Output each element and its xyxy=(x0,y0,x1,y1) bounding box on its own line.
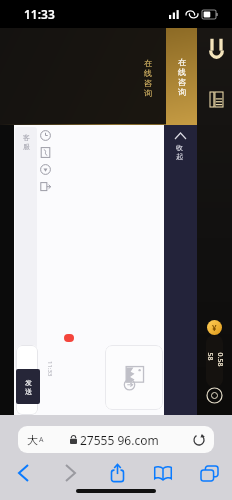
button[interactable]: Bookmarks xyxy=(140,459,186,487)
other: Collapse xyxy=(175,133,186,139)
staticText: 询 xyxy=(178,87,186,97)
other: Reload xyxy=(193,434,205,446)
staticText: 11:33 xyxy=(46,361,54,377)
button[interactable]: Tool 2 xyxy=(40,164,51,175)
button[interactable]: Back xyxy=(0,459,47,487)
button[interactable]: 发 xyxy=(16,369,40,404)
button[interactable]: Tool 0 xyxy=(40,130,51,141)
staticText: 0.5858 xyxy=(206,352,223,369)
staticText: ¥ xyxy=(212,322,217,333)
other: Records xyxy=(210,92,223,107)
staticText: 线 xyxy=(178,67,186,77)
button[interactable]: Coins xyxy=(207,320,222,335)
staticText: 发 xyxy=(25,378,32,387)
staticText: 服 xyxy=(23,142,30,151)
other: Logo xyxy=(209,37,224,59)
button[interactable]: 大 xyxy=(18,426,214,453)
button[interactable]: Share xyxy=(94,459,140,487)
staticText: 27555 96.com xyxy=(80,432,159,448)
staticText: 收 xyxy=(176,143,183,152)
staticText: 询 xyxy=(144,88,152,98)
button[interactable]: Collapse xyxy=(164,125,197,415)
staticText: 线 xyxy=(144,68,152,78)
staticText: 在 xyxy=(178,57,186,67)
staticText: 大 xyxy=(27,433,38,447)
staticText: 11:33 xyxy=(24,6,55,22)
button[interactable]: Forward xyxy=(47,459,94,487)
staticText: 起 xyxy=(176,152,183,161)
staticText: 送 xyxy=(25,387,32,396)
staticText: A xyxy=(39,435,44,445)
button[interactable]: 客 xyxy=(15,127,37,369)
button[interactable]: Tool 1 xyxy=(40,147,51,158)
button[interactable]: Tabs xyxy=(186,459,232,487)
staticText: 在 xyxy=(144,58,152,68)
staticText: 咨 xyxy=(144,78,152,88)
other: Service xyxy=(207,388,222,403)
staticText: 客 xyxy=(23,133,30,142)
staticText: 咨 xyxy=(178,77,186,87)
button[interactable]: Image xyxy=(105,345,163,410)
button[interactable]: Tool 3 xyxy=(40,181,51,192)
button[interactable]: 在 xyxy=(166,28,197,125)
